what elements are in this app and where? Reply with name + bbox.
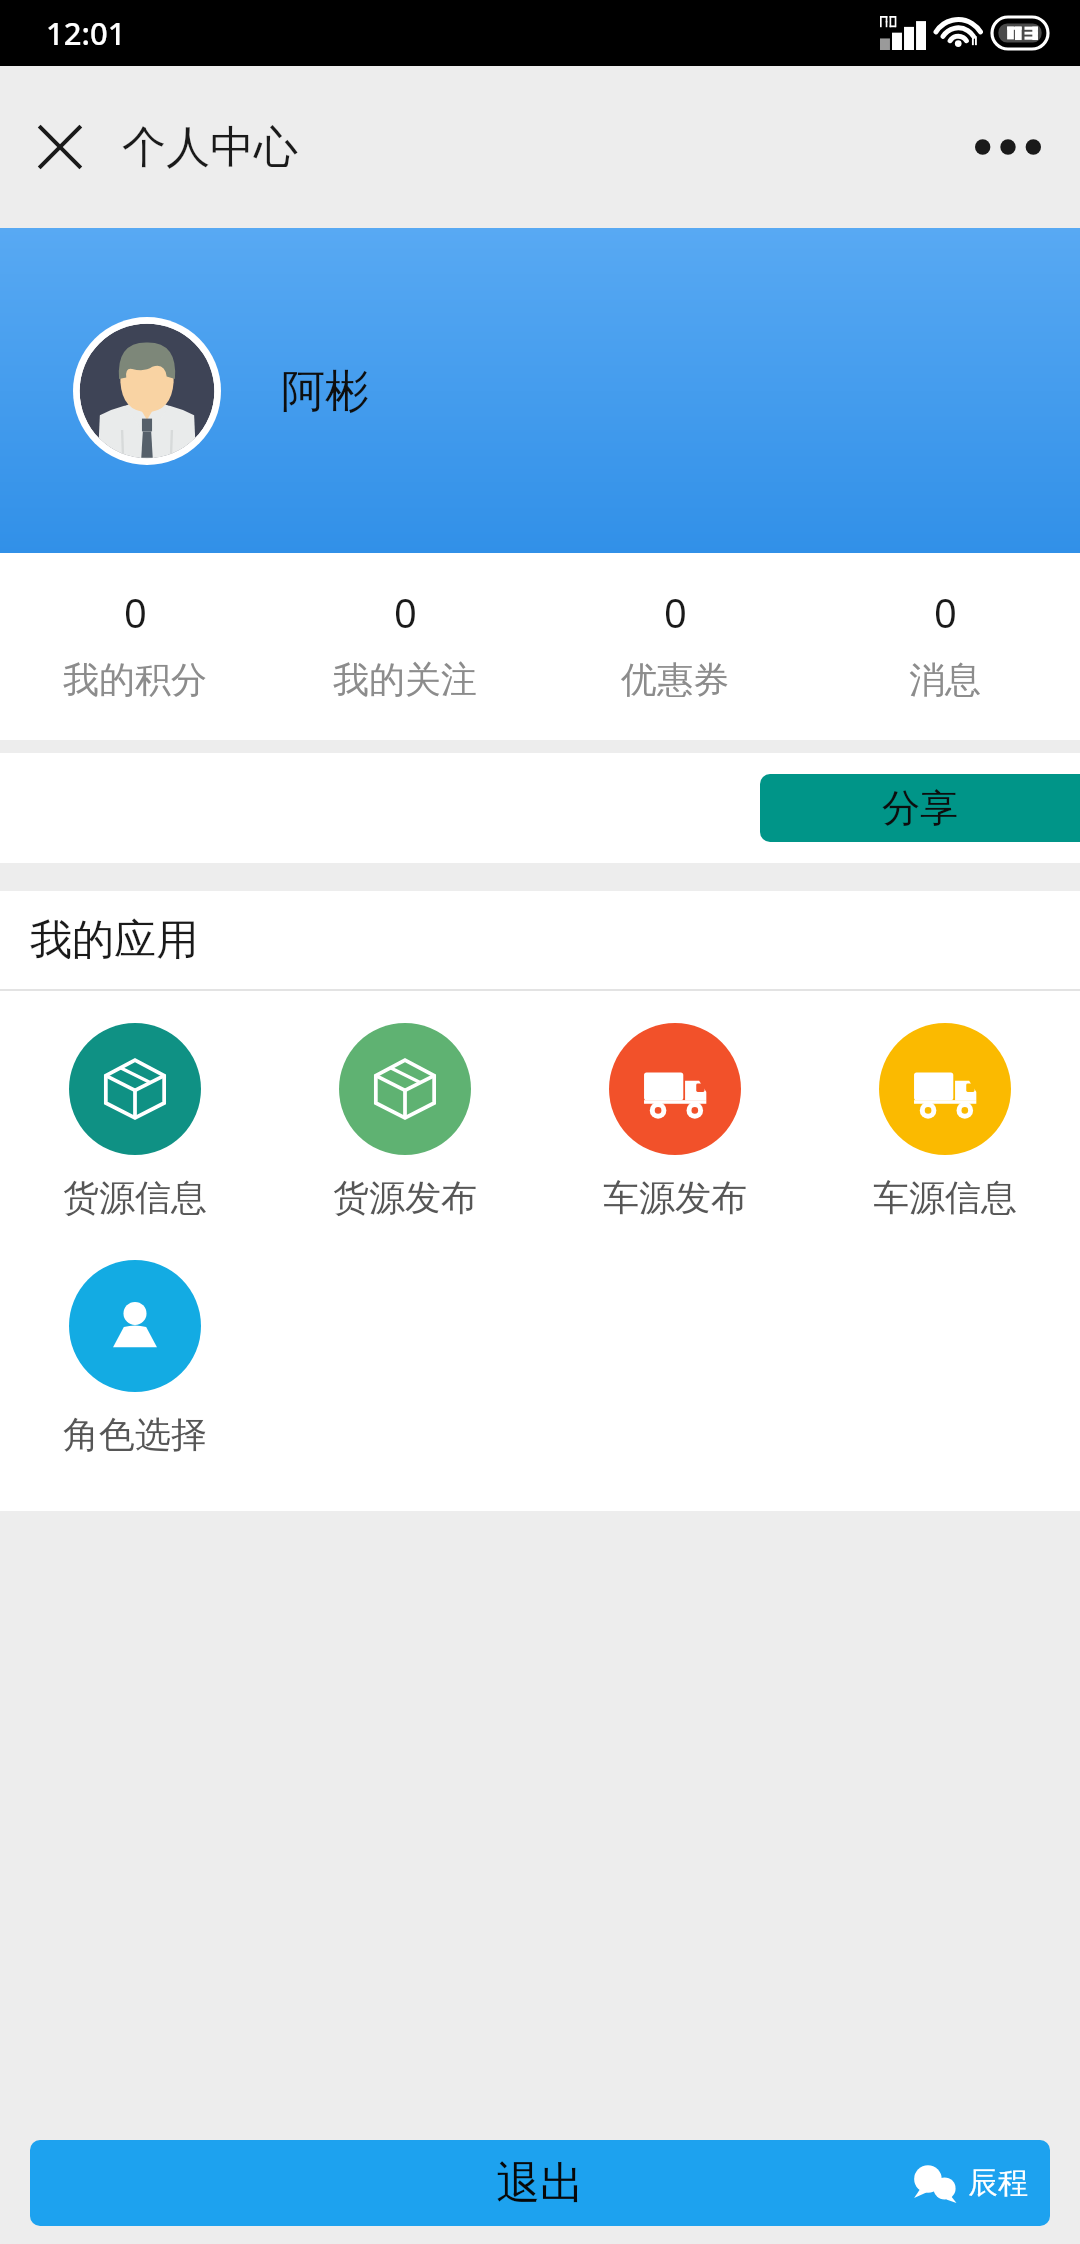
button[interactable]: 车源发布: [540, 1021, 810, 1222]
staticText: 货源信息: [63, 1175, 207, 1220]
button[interactable]: 阿彬: [0, 228, 1080, 553]
button[interactable]: 0: [540, 583, 810, 704]
button[interactable]: 角色选择: [0, 1258, 270, 1459]
staticText: 车源发布: [603, 1175, 747, 1220]
button[interactable]: Close: [12, 99, 108, 195]
button[interactable]: 0: [810, 583, 1080, 704]
button[interactable]: 货源发布: [270, 1021, 540, 1222]
button[interactable]: 车源信息: [810, 1021, 1080, 1222]
staticText: 消息: [909, 657, 981, 702]
staticText: 辰程: [968, 2164, 1028, 2202]
staticText: 12:01: [46, 12, 126, 54]
staticText: 0: [394, 585, 417, 639]
staticText: 0: [124, 585, 147, 639]
button[interactable]: 0: [270, 583, 540, 704]
staticText: 我的关注: [333, 657, 477, 702]
button[interactable]: More options: [960, 99, 1056, 195]
staticText: 阿彬: [281, 364, 369, 419]
staticText: 角色选择: [63, 1412, 207, 1457]
button[interactable]: 退出: [30, 2140, 1050, 2226]
staticText: 我的积分: [63, 657, 207, 702]
staticText: 我的应用: [30, 914, 198, 967]
staticText: 退出: [496, 2156, 584, 2211]
button[interactable]: 货源信息: [0, 1021, 270, 1222]
button[interactable]: 0: [0, 583, 270, 704]
staticText: 个人中心: [122, 120, 298, 175]
staticText: 0: [934, 585, 957, 639]
staticText: 车源信息: [873, 1175, 1017, 1220]
staticText: 优惠券: [621, 657, 729, 702]
staticText: 0: [664, 585, 687, 639]
staticText: 分享: [882, 784, 958, 832]
staticText: 货源发布: [333, 1175, 477, 1220]
button[interactable]: 分享: [760, 774, 1080, 842]
